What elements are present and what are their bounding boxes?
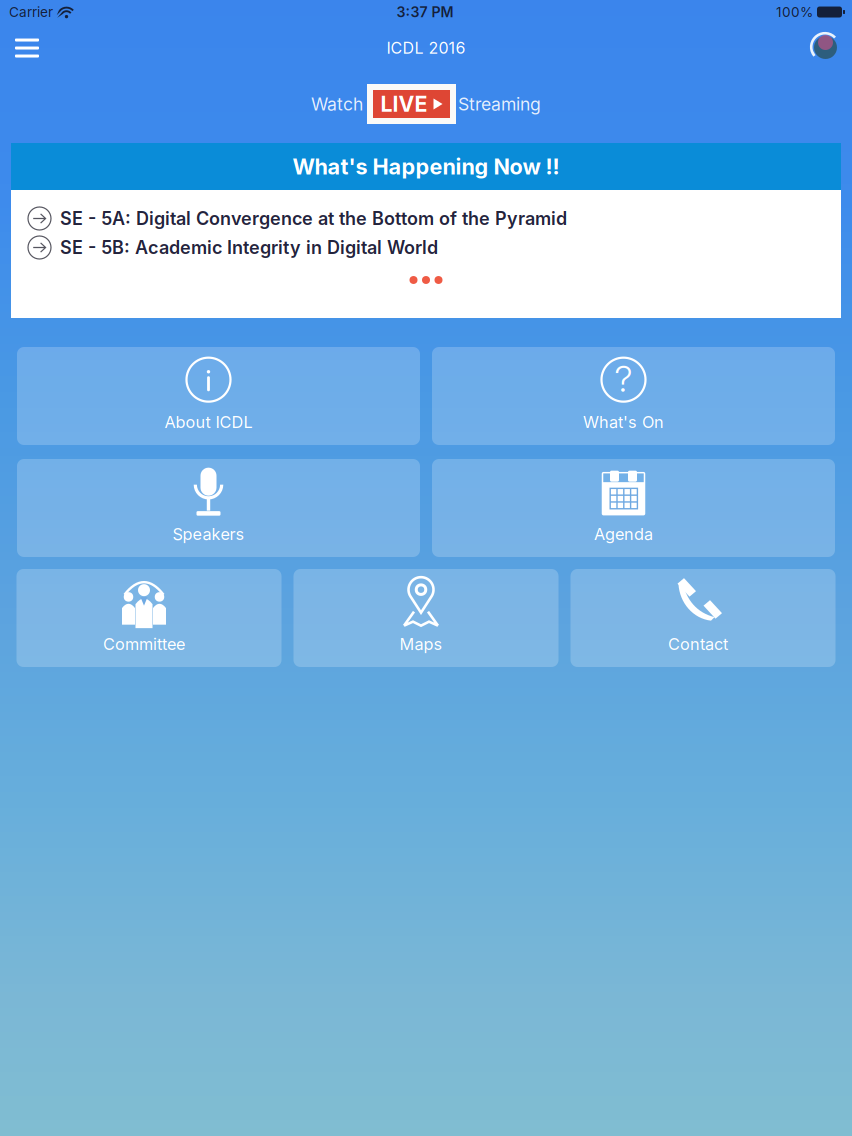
button[interactable]: Contact [570,569,835,667]
staticText: ? [614,357,632,400]
button[interactable]: Committee [16,569,281,667]
button[interactable]: Agenda [432,459,835,557]
staticText: LIVE [380,91,427,117]
staticText: About ICDL [164,412,252,432]
button[interactable]: ? [432,347,835,445]
staticText: Maps [399,634,442,654]
staticText: Agenda [594,524,653,544]
staticText: Streaming [458,93,541,115]
staticText: Committee [103,634,185,654]
staticText: Speakers [172,524,244,544]
button[interactable]: SE - 5A: Digital Convergence at the Bott… [11,204,841,233]
button[interactable]: Maps [293,569,558,667]
button[interactable]: Speakers [17,459,420,557]
staticText: 3:37 PM [396,3,453,20]
staticText: SE - 5A: Digital Convergence at the Bott… [60,208,567,229]
button[interactable]: About ICDL [17,347,420,445]
staticText: Carrier [9,4,53,20]
button[interactable]: Conference website [803,27,847,69]
staticText: What's Happening Now !! [292,153,559,180]
staticText: Contact [668,634,728,654]
staticText: SE - 5B: Academic Integrity in Digital W… [60,237,438,258]
button[interactable]: Menu [5,28,49,67]
staticText: Watch [311,93,363,115]
staticText: What's On [583,412,664,432]
button[interactable]: LIVE [367,84,456,124]
staticText: ICDL 2016 [386,38,465,58]
button[interactable]: SE - 5B: Academic Integrity in Digital W… [11,233,841,262]
staticText: 100% [776,4,813,20]
